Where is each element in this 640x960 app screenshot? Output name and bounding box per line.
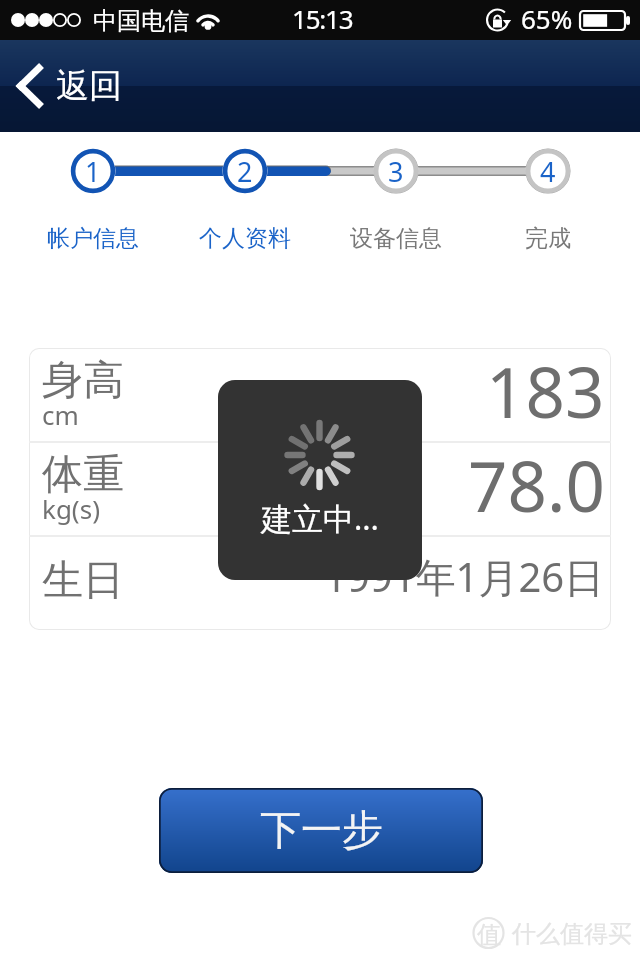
button[interactable]: 下一步 xyxy=(159,788,483,873)
staticText: 设备信息 xyxy=(350,224,442,253)
staticText: 78.0 xyxy=(468,438,605,532)
button[interactable]: 步骤 2 个人资料 xyxy=(173,146,317,256)
staticText: 身高 xyxy=(42,355,124,407)
staticText: 4 xyxy=(540,153,556,190)
staticText: 建立中... xyxy=(261,497,379,539)
staticText: 15:13 xyxy=(292,1,353,36)
staticText: 2 xyxy=(237,153,253,190)
staticText: 下一步 xyxy=(260,805,383,857)
staticText: 3 xyxy=(388,153,404,190)
button[interactable]: 生日 xyxy=(29,536,611,630)
staticText: 中国电信 xyxy=(93,6,189,36)
staticText: 1991年1月26日 xyxy=(324,549,605,604)
button[interactable]: 身高 xyxy=(29,348,611,442)
staticText: 完成 xyxy=(525,224,571,253)
staticText: cm xyxy=(42,397,79,432)
button[interactable]: 步骤 4 完成 xyxy=(476,146,620,256)
staticText: 值 xyxy=(477,920,501,950)
button[interactable]: Back xyxy=(0,40,640,132)
staticText: 1 xyxy=(85,153,101,190)
other: Back xyxy=(12,63,46,109)
staticText: 体重 xyxy=(42,449,124,501)
button[interactable]: 步骤 1 帐户信息 xyxy=(21,146,165,256)
staticText: kg(s) xyxy=(42,491,100,526)
staticText: 183 xyxy=(486,348,605,438)
staticText: 什么值得买 xyxy=(512,919,632,949)
staticText: 生日 xyxy=(42,555,124,607)
staticText: 帐户信息 xyxy=(47,224,139,253)
staticText: 返回 xyxy=(56,65,122,107)
button[interactable]: 体重 xyxy=(29,442,611,536)
staticText: 65% xyxy=(521,1,573,36)
staticText: 个人资料 xyxy=(199,224,291,253)
button[interactable]: 步骤 3 设备信息 xyxy=(324,146,468,256)
